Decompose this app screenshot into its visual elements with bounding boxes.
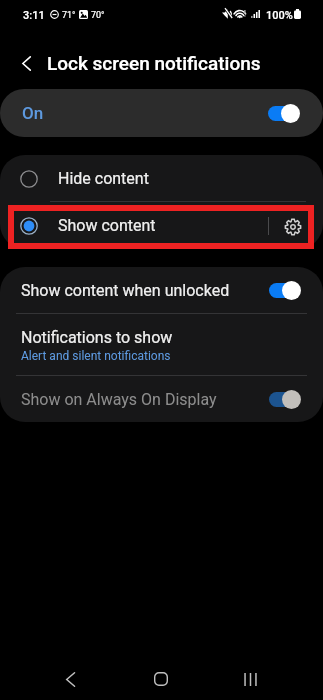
button[interactable]: Recent apps [228, 658, 273, 700]
button[interactable]: Show content [0, 202, 323, 249]
staticText: Show content when unlocked [21, 281, 230, 300]
staticText: Alert and silent notifications [21, 349, 171, 363]
button[interactable]: Hide content [0, 155, 323, 202]
button[interactable]: Back [48, 658, 93, 700]
staticText: Show content [58, 216, 156, 235]
button[interactable]: On [0, 89, 323, 137]
staticText: 70° [91, 10, 105, 21]
staticText: Show on Always On Display [21, 390, 217, 409]
staticText: 3:11 [23, 9, 45, 22]
button[interactable]: Notification settings [276, 210, 309, 243]
button[interactable]: Show on Always On Display [0, 376, 323, 422]
staticText: Lock screen notifications [47, 52, 261, 74]
button[interactable]: Navigate up [5, 42, 47, 84]
staticText: 100% [266, 9, 293, 22]
button[interactable]: Notifications to show [0, 314, 323, 376]
button[interactable]: Home [138, 658, 183, 700]
staticText: Hide content [58, 169, 149, 188]
staticText: Notifications to show [21, 328, 173, 347]
button[interactable]: Show content when unlocked [0, 267, 323, 314]
staticText: 71° [62, 10, 76, 21]
staticText: On [22, 103, 44, 123]
